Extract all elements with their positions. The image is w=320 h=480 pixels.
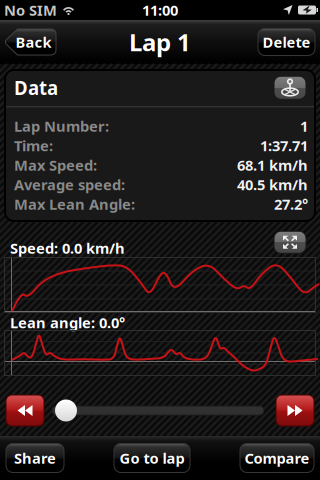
staticText: 11:00 [142, 0, 178, 20]
staticText: Max Speed: [14, 155, 97, 175]
button[interactable]: Fast forward [276, 395, 314, 426]
staticText: No SIM [4, 0, 57, 20]
staticText: 40.5 km/h [237, 175, 308, 194]
button[interactable]: Expand chart [274, 231, 306, 253]
staticText: Max Lean Angle: [14, 194, 135, 214]
button[interactable]: Delete [258, 28, 315, 55]
staticText: Data [14, 75, 58, 100]
staticText: 27.2° [274, 194, 308, 214]
staticText: Lap Number: [14, 116, 109, 136]
button[interactable]: Compare [240, 443, 314, 472]
button[interactable]: Playback position [52, 395, 264, 426]
staticText: Delete [262, 32, 310, 52]
button[interactable]: Show on map [274, 76, 306, 99]
staticText: 68.1 km/h [237, 155, 308, 175]
staticText: Speed: 0.0 km/h [10, 238, 125, 258]
staticText: Compare [244, 448, 309, 468]
staticText: Lean angle: 0.0° [10, 313, 125, 332]
button[interactable]: Rewind [6, 395, 44, 426]
button[interactable]: Go to lap [114, 443, 190, 472]
staticText: Share [14, 448, 56, 468]
staticText: Time: [14, 136, 53, 155]
staticText: Go to lap [119, 448, 184, 468]
staticText: 1 [300, 116, 308, 136]
staticText: 1:37.71 [260, 136, 308, 155]
staticText: Back [15, 32, 51, 52]
staticText: Average speed: [14, 175, 125, 194]
button[interactable]: Share [6, 443, 64, 472]
staticText: Lap 1 [129, 26, 191, 58]
button[interactable]: Back [5, 28, 56, 55]
